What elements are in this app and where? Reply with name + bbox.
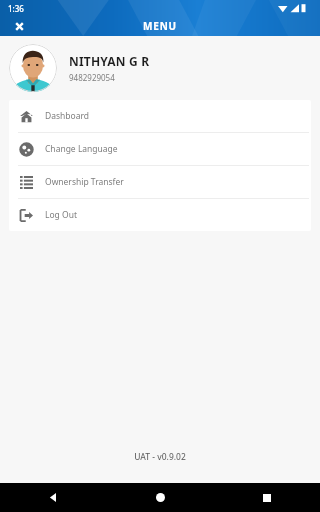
staticText: Change Language — [45, 143, 118, 155]
button[interactable]: Home — [107, 483, 214, 512]
button[interactable]: Recents — [213, 483, 320, 512]
staticText: MENU — [143, 19, 177, 33]
staticText: NITHYAN G R — [69, 53, 150, 69]
staticText: Ownership Transfer — [45, 176, 124, 188]
staticText: UAT - v0.9.02 — [0, 451, 320, 463]
button[interactable]: Change Language — [9, 133, 311, 165]
staticText: Dashboard — [45, 110, 90, 122]
button[interactable]: NITHYAN G R — [9, 44, 320, 92]
staticText: Log Out — [45, 209, 77, 221]
button[interactable]: Log Out — [9, 199, 311, 231]
button[interactable]: Close — [10, 17, 28, 35]
button[interactable]: Dashboard — [9, 100, 311, 132]
staticText: 9482929054 — [69, 72, 115, 83]
staticText: 1:36 — [8, 3, 24, 14]
button[interactable]: Back — [0, 483, 107, 512]
button[interactable]: Ownership Transfer — [9, 166, 311, 198]
